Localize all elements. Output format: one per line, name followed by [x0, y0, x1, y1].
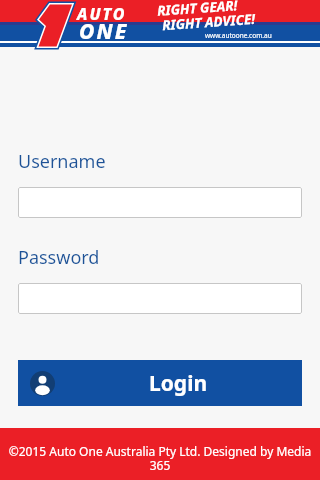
staticText: ©2015 Auto One Australia Pty Ltd. Design… [0, 443, 320, 474]
button[interactable] [18, 283, 302, 314]
staticText: AUTO [77, 3, 127, 25]
button[interactable] [18, 187, 302, 218]
staticText: Password [18, 245, 100, 270]
staticText: Login [149, 369, 208, 398]
staticText: ONE [79, 17, 129, 46]
button[interactable]: Login [18, 360, 302, 406]
staticText: www.autoone.com.au [205, 31, 272, 40]
staticText: RIGHT GEAR! [156, 0, 239, 20]
staticText: RIGHT ADVICE! [161, 10, 256, 34]
staticText: Username [18, 149, 106, 174]
